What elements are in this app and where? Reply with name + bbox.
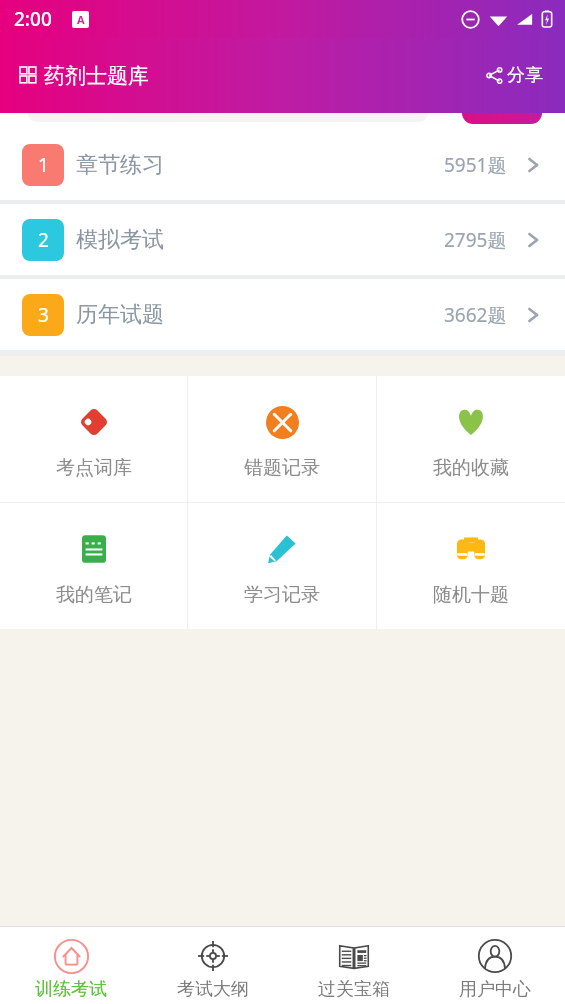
button[interactable]: 过关宝箱 — [283, 931, 424, 1001]
staticText: 2795题 — [444, 227, 507, 253]
staticText: 训练考试 — [35, 978, 107, 1001]
button[interactable]: 3 — [0, 279, 565, 350]
staticText: 模拟考试 — [76, 226, 164, 254]
staticText: 错题记录 — [244, 456, 320, 480]
button[interactable]: 分享 — [480, 58, 549, 93]
staticText: 药剂士题库 — [44, 63, 149, 89]
staticText: 考试大纲 — [177, 978, 249, 1001]
staticText: 5951题 — [444, 152, 507, 178]
button[interactable]: 我的笔记 — [0, 503, 187, 607]
staticText: 考点词库 — [56, 456, 132, 480]
staticText: 历年试题 — [76, 301, 164, 329]
button[interactable]: 用户中心 — [424, 931, 565, 1001]
button[interactable]: 错题记录 — [188, 376, 376, 480]
staticText: 1 — [38, 152, 49, 178]
button[interactable]: 考试大纲 — [142, 931, 283, 1001]
button[interactable]: 我的收藏 — [377, 376, 565, 480]
staticText: 分享 — [507, 64, 543, 87]
staticText: 3 — [38, 302, 49, 328]
staticText: 用户中心 — [459, 978, 531, 1001]
button[interactable]: 训练考试 — [0, 931, 142, 1001]
staticText: 3662题 — [444, 302, 507, 328]
staticText: 2:00 — [14, 6, 52, 32]
button[interactable]: 2 — [0, 204, 565, 275]
staticText: 随机十题 — [433, 583, 509, 607]
button[interactable]: 随机十题 — [377, 503, 565, 607]
button[interactable]: 1 — [0, 129, 565, 200]
button[interactable]: 学习记录 — [188, 503, 376, 607]
staticText: 我的收藏 — [433, 456, 509, 480]
staticText: 章节练习 — [76, 151, 164, 179]
staticText: 2 — [38, 227, 49, 253]
staticText: 过关宝箱 — [318, 978, 390, 1001]
button[interactable]: 考点词库 — [0, 376, 187, 480]
staticText: A — [77, 12, 85, 27]
staticText: 学习记录 — [244, 583, 320, 607]
staticText: 我的笔记 — [56, 583, 132, 607]
